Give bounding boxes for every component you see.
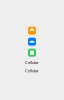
staticText: Cellular (25, 68, 39, 73)
staticText: Cellular (25, 60, 39, 65)
